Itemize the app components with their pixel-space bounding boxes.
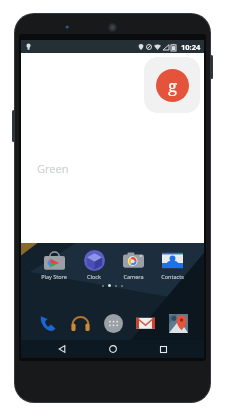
button[interactable]: Play Store (40, 248, 68, 280)
button[interactable]: Clock (81, 248, 107, 280)
button[interactable]: Gmail (133, 311, 157, 335)
button[interactable]: Home (104, 340, 122, 358)
button[interactable]: Music (68, 311, 92, 335)
staticText: g (168, 74, 178, 97)
button[interactable]: Phone (36, 311, 60, 335)
button[interactable]: Google Search (144, 57, 200, 113)
button[interactable]: All apps (101, 311, 125, 335)
staticText: Contacts (161, 273, 184, 280)
button[interactable]: Camera (120, 248, 146, 280)
staticText: Clock (87, 273, 101, 280)
button[interactable]: Maps (166, 311, 190, 335)
button[interactable]: Contacts (159, 248, 185, 280)
button[interactable]: Back (53, 340, 71, 358)
staticText: Play Store (41, 273, 67, 280)
staticText: Green (37, 161, 69, 176)
staticText: 10:24 (181, 42, 201, 52)
button[interactable]: Recent apps (154, 340, 172, 358)
staticText: Camera (123, 273, 144, 280)
